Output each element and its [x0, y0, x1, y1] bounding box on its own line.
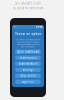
button[interactable]: View reports [15, 56, 41, 60]
staticText: Team members [18, 62, 37, 65]
staticText: See why API is still [15, 2, 41, 5]
staticText: together in one simple, shared and [16, 44, 39, 45]
staticText: Settings [22, 68, 33, 71]
staticText: the work moving forward, collected [16, 41, 39, 43]
staticText: Sign out [22, 80, 34, 83]
button[interactable]: Open dashboard [15, 50, 41, 54]
staticText: Everything your team needs to keep [15, 39, 40, 41]
button[interactable]: Help center [15, 74, 41, 78]
staticText: always up to date place. [20, 46, 35, 48]
staticText: Help center [19, 74, 36, 77]
staticText: View reports [19, 56, 36, 59]
button[interactable]: Sign out [15, 80, 41, 84]
staticText: so great for every team [13, 6, 43, 10]
staticText: Choose an option [14, 32, 41, 36]
button[interactable]: Team members [15, 62, 41, 66]
staticText: Open dashboard [16, 50, 39, 53]
button[interactable]: Settings [15, 68, 41, 72]
staticText: 9:41 [14, 26, 17, 28]
